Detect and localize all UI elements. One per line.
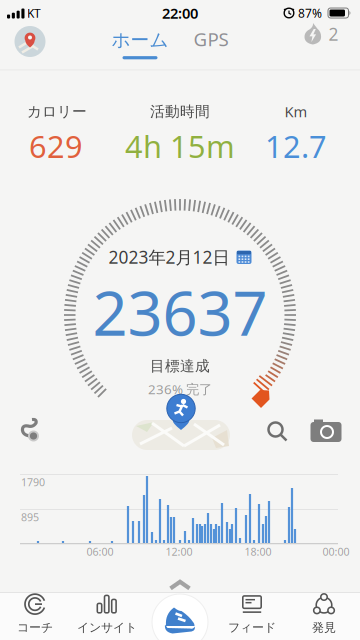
staticText: コーチ (17, 620, 53, 635)
staticText: 236% 完了 (148, 380, 212, 398)
button[interactable]: 2023年2月12日 (108, 245, 251, 268)
staticText: 目標達成 (150, 357, 210, 375)
button[interactable]: Streak (303, 22, 338, 45)
button[interactable]: Map (132, 392, 230, 450)
staticText: 06:00 (86, 544, 113, 559)
staticText: 18:00 (244, 544, 271, 559)
staticText: 22:00 (162, 3, 198, 23)
staticText: 活動時間 (150, 102, 210, 120)
staticText: カロリー (27, 102, 87, 120)
button[interactable]: インサイト (73, 591, 141, 637)
staticText: 発見 (312, 620, 336, 635)
staticText: 2023年2月12日 (108, 245, 229, 268)
staticText: 895 (21, 510, 39, 524)
staticText: 1790 (21, 475, 45, 489)
button[interactable]: ホーム (111, 29, 168, 59)
staticText: Km (284, 102, 307, 121)
staticText: KT (27, 5, 41, 21)
button[interactable]: 発見 (290, 591, 358, 637)
button[interactable]: GPS (181, 21, 241, 57)
button[interactable]: Route (11, 412, 51, 448)
button[interactable]: フィード (218, 591, 286, 637)
staticText: フィード (228, 620, 276, 635)
staticText: 2 (328, 22, 338, 45)
button[interactable]: Camera (306, 414, 346, 448)
button[interactable]: Steps (151, 593, 209, 640)
button[interactable]: コーチ (1, 591, 69, 637)
button[interactable]: Search (260, 414, 294, 448)
staticText: 87% (298, 5, 322, 21)
staticText: GPS (193, 27, 228, 51)
staticText: 00:00 (322, 544, 349, 559)
staticText: 23637 (92, 271, 267, 353)
staticText: インサイト (77, 620, 137, 635)
staticText: 629 (29, 126, 83, 166)
staticText: 12:00 (165, 544, 192, 559)
staticText: 4h 15m (125, 126, 235, 166)
button[interactable]: Profile (11, 22, 49, 60)
button[interactable]: Expand (168, 580, 191, 590)
staticText: 12.7 (265, 126, 327, 166)
staticText: ホーム (111, 29, 168, 52)
